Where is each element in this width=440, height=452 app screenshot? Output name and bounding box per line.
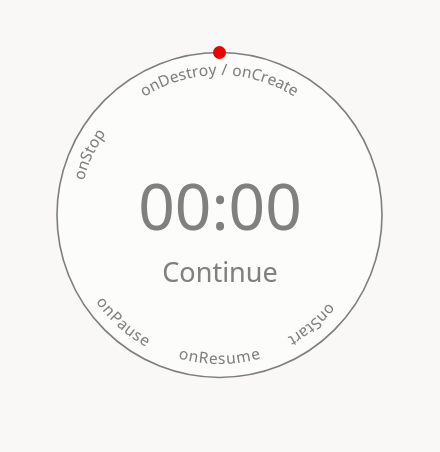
button[interactable]: 00:00	[0, 0, 440, 452]
staticText: 00:00	[138, 162, 302, 249]
staticText: Continue	[162, 253, 278, 290]
other: Activity lifecycle ring	[0, 0, 440, 452]
